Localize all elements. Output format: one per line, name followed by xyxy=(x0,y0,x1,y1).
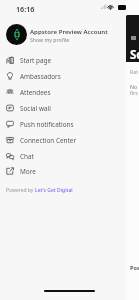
staticText: Attendees xyxy=(20,88,51,97)
button[interactable]: Appstore Preview Account xyxy=(0,24,126,45)
staticText: Connection Center xyxy=(20,136,77,145)
staticText: Rat xyxy=(130,68,139,75)
staticText: Chat xyxy=(20,152,34,161)
button[interactable]: Connection Center xyxy=(0,132,126,148)
button[interactable]: Start page xyxy=(0,52,126,68)
staticText: Show my profile xyxy=(30,36,70,43)
button[interactable]: Social wall xyxy=(0,100,126,116)
button[interactable]: Push notifications xyxy=(0,116,126,132)
button[interactable]: Attendees xyxy=(0,84,126,100)
staticText: Social wall xyxy=(20,104,51,113)
staticText: No xyxy=(130,83,138,90)
button[interactable]: More xyxy=(0,163,126,179)
staticText: Powered by xyxy=(6,187,35,194)
button[interactable]: Chat xyxy=(0,148,126,164)
staticText: Start page xyxy=(20,56,52,65)
staticText: Let's Get Digital xyxy=(35,187,73,194)
staticText: Ambassadors xyxy=(20,72,61,81)
staticText: Sc xyxy=(130,47,139,63)
staticText: More xyxy=(20,167,36,176)
staticText: firs xyxy=(130,89,138,96)
staticText: Push notifications xyxy=(20,120,74,129)
staticText: Pos xyxy=(130,264,139,272)
staticText: 16:16 xyxy=(16,4,35,14)
button[interactable]: Ambassadors xyxy=(0,68,126,84)
staticText: Appstore Preview Account xyxy=(30,27,108,35)
